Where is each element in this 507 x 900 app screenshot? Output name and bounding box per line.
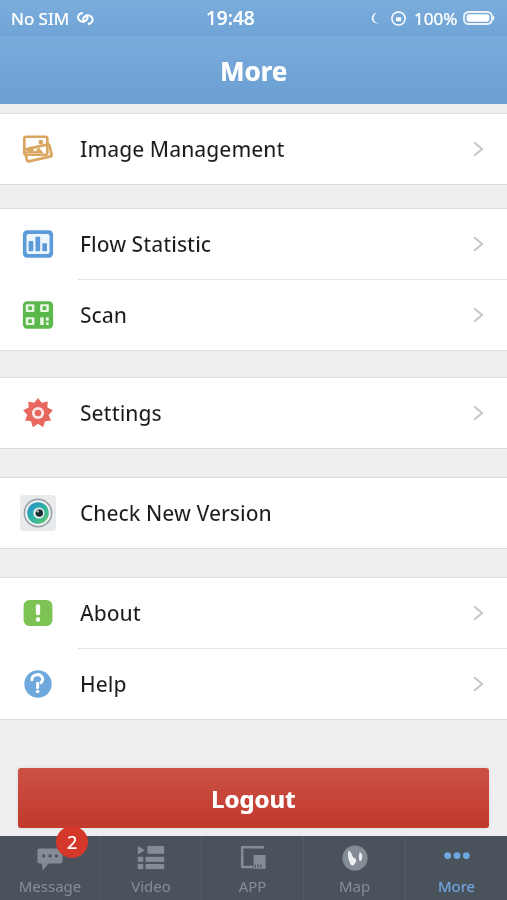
staticText: No SIM [11, 7, 70, 30]
button[interactable]: Image Management [0, 114, 507, 184]
staticText: Video [101, 876, 201, 896]
button[interactable]: Check New Version [0, 478, 507, 548]
button[interactable]: Message [0, 836, 100, 900]
staticText: APP [202, 876, 303, 896]
staticText: More [220, 53, 288, 88]
button[interactable]: About [0, 578, 507, 648]
button[interactable]: Flow Statistic [0, 209, 507, 279]
staticText: Logout [211, 782, 296, 815]
button[interactable]: APP [202, 836, 303, 900]
button[interactable]: More [406, 836, 507, 900]
staticText: 100% [414, 7, 458, 30]
staticText: More [406, 876, 507, 896]
staticText: 2 [67, 830, 78, 855]
button[interactable]: Help [0, 649, 507, 719]
staticText: Message [0, 876, 100, 896]
button[interactable]: Video [101, 836, 201, 900]
staticText: Scan [80, 301, 465, 330]
staticText: About [80, 599, 465, 628]
button[interactable]: Logout [18, 768, 489, 828]
staticText: 19:48 [206, 5, 255, 31]
button[interactable]: Scan [0, 280, 507, 350]
staticText: Image Management [80, 135, 465, 164]
staticText: Settings [80, 399, 465, 428]
button[interactable]: Map [304, 836, 405, 900]
staticText: Flow Statistic [80, 230, 465, 259]
staticText: Map [304, 876, 405, 896]
staticText: Check New Version [80, 499, 465, 528]
staticText: Help [80, 670, 465, 699]
button[interactable]: Settings [0, 378, 507, 448]
